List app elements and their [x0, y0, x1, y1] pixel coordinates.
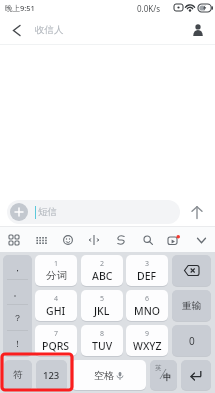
button[interactable] [139, 231, 157, 249]
staticText: ABC [92, 269, 113, 283]
button[interactable] [172, 255, 211, 286]
button[interactable]: 123 [36, 360, 67, 390]
staticText: ， [13, 262, 22, 273]
button[interactable] [5, 231, 23, 249]
button[interactable] [5, 19, 27, 41]
staticText: 3 [145, 259, 150, 269]
staticText: 符 [13, 369, 23, 381]
button[interactable]: 7 [35, 325, 77, 356]
staticText: 7 [54, 329, 59, 339]
button[interactable]: ！ [3, 331, 32, 356]
staticText: PQRS [42, 339, 70, 353]
staticText: 0 [189, 334, 195, 348]
staticText: 。 [13, 287, 22, 298]
button[interactable] [187, 19, 208, 41]
button[interactable]: 符 [4, 360, 32, 390]
button[interactable]: 1 [35, 255, 77, 286]
staticText: WXYZ [133, 339, 162, 353]
button[interactable] [10, 203, 28, 221]
staticText: 英 [155, 364, 162, 372]
staticText: 4 [54, 294, 59, 304]
button[interactable]: 9 [126, 325, 168, 356]
button[interactable] [85, 231, 103, 249]
button[interactable]: 6 [126, 290, 168, 321]
button[interactable]: 5 [81, 290, 123, 321]
button[interactable] [185, 200, 208, 224]
staticText: 6 [145, 294, 150, 304]
staticText: DEF [137, 269, 157, 283]
staticText: MNO [134, 304, 161, 318]
staticText: 8 [100, 329, 105, 339]
button[interactable]: ， [3, 255, 32, 279]
button[interactable] [165, 231, 183, 249]
button[interactable]: ？ [3, 305, 32, 330]
button[interactable]: 重输 [172, 290, 211, 321]
button[interactable]: 3 [126, 255, 168, 286]
button[interactable]: 短信 [7, 200, 180, 224]
button[interactable]: 2 [81, 255, 123, 286]
staticText: TUV [92, 339, 113, 353]
staticText: 2 [100, 259, 105, 269]
staticText: 空格 [94, 369, 114, 382]
button[interactable] [32, 231, 50, 249]
staticText: 123 [43, 369, 60, 382]
button[interactable]: 0 [172, 325, 211, 356]
staticText: 5 [100, 294, 105, 304]
button[interactable]: 8 [81, 325, 123, 356]
staticText: 晚上9:51 [5, 3, 35, 13]
staticText: ？ [13, 312, 22, 323]
staticText: JKL [94, 304, 110, 318]
staticText: 0.0K/s [137, 3, 161, 14]
staticText: 中 [163, 372, 172, 383]
staticText: 1 [54, 259, 59, 269]
button[interactable] [181, 360, 211, 390]
button[interactable] [112, 231, 130, 249]
staticText: GHI [46, 304, 66, 318]
staticText: ！ [13, 338, 22, 349]
staticText: 收信人 [35, 24, 64, 36]
button[interactable] [192, 231, 210, 249]
staticText: 重输 [182, 300, 201, 312]
staticText: 9 [145, 329, 150, 339]
button[interactable]: 。 [3, 280, 32, 304]
staticText: 短信 [38, 206, 57, 218]
button[interactable]: 空格 [71, 360, 146, 390]
staticText: 分词 [46, 269, 67, 282]
button[interactable] [59, 231, 77, 249]
button[interactable]: 英 [150, 360, 177, 390]
button[interactable]: 4 [35, 290, 77, 321]
